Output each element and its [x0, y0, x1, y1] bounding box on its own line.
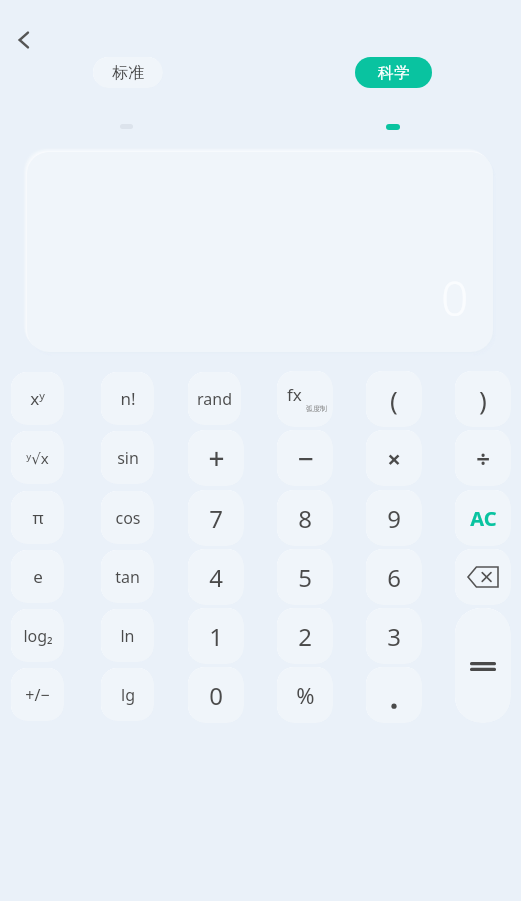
button[interactable]: 1	[188, 608, 244, 664]
staticText: sin	[117, 447, 139, 469]
button[interactable]: Decimal point	[366, 667, 422, 723]
button[interactable]: Equals	[455, 608, 511, 723]
staticText: 0	[441, 265, 469, 330]
button[interactable]: 3	[366, 608, 422, 664]
staticText: 标准	[112, 63, 144, 83]
staticText: xʸ	[30, 387, 45, 410]
button[interactable]: )	[455, 371, 511, 427]
button[interactable]: 科学	[355, 57, 432, 88]
staticText: lg	[121, 684, 135, 706]
button[interactable]: AC	[455, 490, 511, 546]
staticText: +/−	[25, 684, 50, 706]
staticText: 6	[387, 561, 401, 594]
button[interactable]: (	[366, 371, 422, 427]
staticText: 3	[387, 620, 401, 653]
staticText: ÷	[476, 442, 490, 475]
button[interactable]: 8	[277, 490, 333, 546]
button[interactable]: e	[11, 550, 64, 603]
button[interactable]: 5	[277, 549, 333, 605]
button[interactable]: π	[11, 491, 64, 544]
staticText: fx	[287, 383, 302, 406]
button[interactable]: ×	[366, 430, 422, 486]
staticText: ×	[387, 442, 401, 475]
button[interactable]: 7	[188, 490, 244, 546]
staticText: e	[33, 565, 43, 588]
button[interactable]: Backspace	[455, 549, 511, 605]
staticText: 弧度制	[306, 404, 327, 413]
staticText: 5	[298, 561, 312, 594]
staticText: 7	[209, 502, 223, 535]
staticText: ʸ√x	[26, 448, 49, 468]
staticText: 科学	[378, 63, 410, 83]
staticText: rand	[197, 388, 232, 410]
staticText: (	[390, 382, 398, 417]
staticText: 2	[298, 620, 312, 653]
button[interactable]: ÷	[455, 430, 511, 486]
button[interactable]: tan	[101, 550, 154, 603]
button[interactable]: 0	[188, 667, 244, 723]
staticText: AC	[470, 505, 497, 532]
staticText: +	[208, 439, 225, 477]
staticText: %	[296, 680, 315, 710]
button[interactable]: 9	[366, 490, 422, 546]
button[interactable]: +	[188, 430, 244, 486]
button[interactable]: sin	[101, 431, 154, 484]
button[interactable]: n!	[101, 372, 154, 425]
button[interactable]: xʸ	[11, 372, 64, 425]
button[interactable]: 2	[277, 608, 333, 664]
staticText: )	[479, 382, 487, 417]
button[interactable]: cos	[101, 491, 154, 544]
staticText: π	[32, 506, 44, 529]
button[interactable]: 标准	[93, 57, 163, 88]
button[interactable]: lg	[101, 668, 154, 721]
staticText: ln	[120, 625, 135, 647]
staticText: 4	[209, 561, 223, 594]
staticText: cos	[115, 507, 141, 529]
button[interactable]: log₂	[11, 609, 64, 662]
button[interactable]: %	[277, 667, 333, 723]
button[interactable]: −	[277, 430, 333, 486]
button[interactable]: Back	[4, 20, 44, 60]
staticText: 9	[387, 502, 401, 535]
staticText: 8	[298, 502, 312, 535]
button[interactable]: ʸ√x	[11, 431, 64, 484]
staticText: n!	[120, 387, 136, 410]
button[interactable]: 6	[366, 549, 422, 605]
staticText: −	[297, 439, 314, 477]
button[interactable]: +/−	[11, 668, 64, 721]
button[interactable]: rand	[188, 372, 241, 425]
button[interactable]: fx	[277, 371, 333, 427]
staticText: 0	[209, 679, 223, 712]
staticText: 1	[209, 620, 223, 653]
staticText: log₂	[23, 625, 53, 647]
button[interactable]: 4	[188, 549, 244, 605]
staticText: tan	[115, 566, 140, 588]
button[interactable]: ln	[101, 609, 154, 662]
